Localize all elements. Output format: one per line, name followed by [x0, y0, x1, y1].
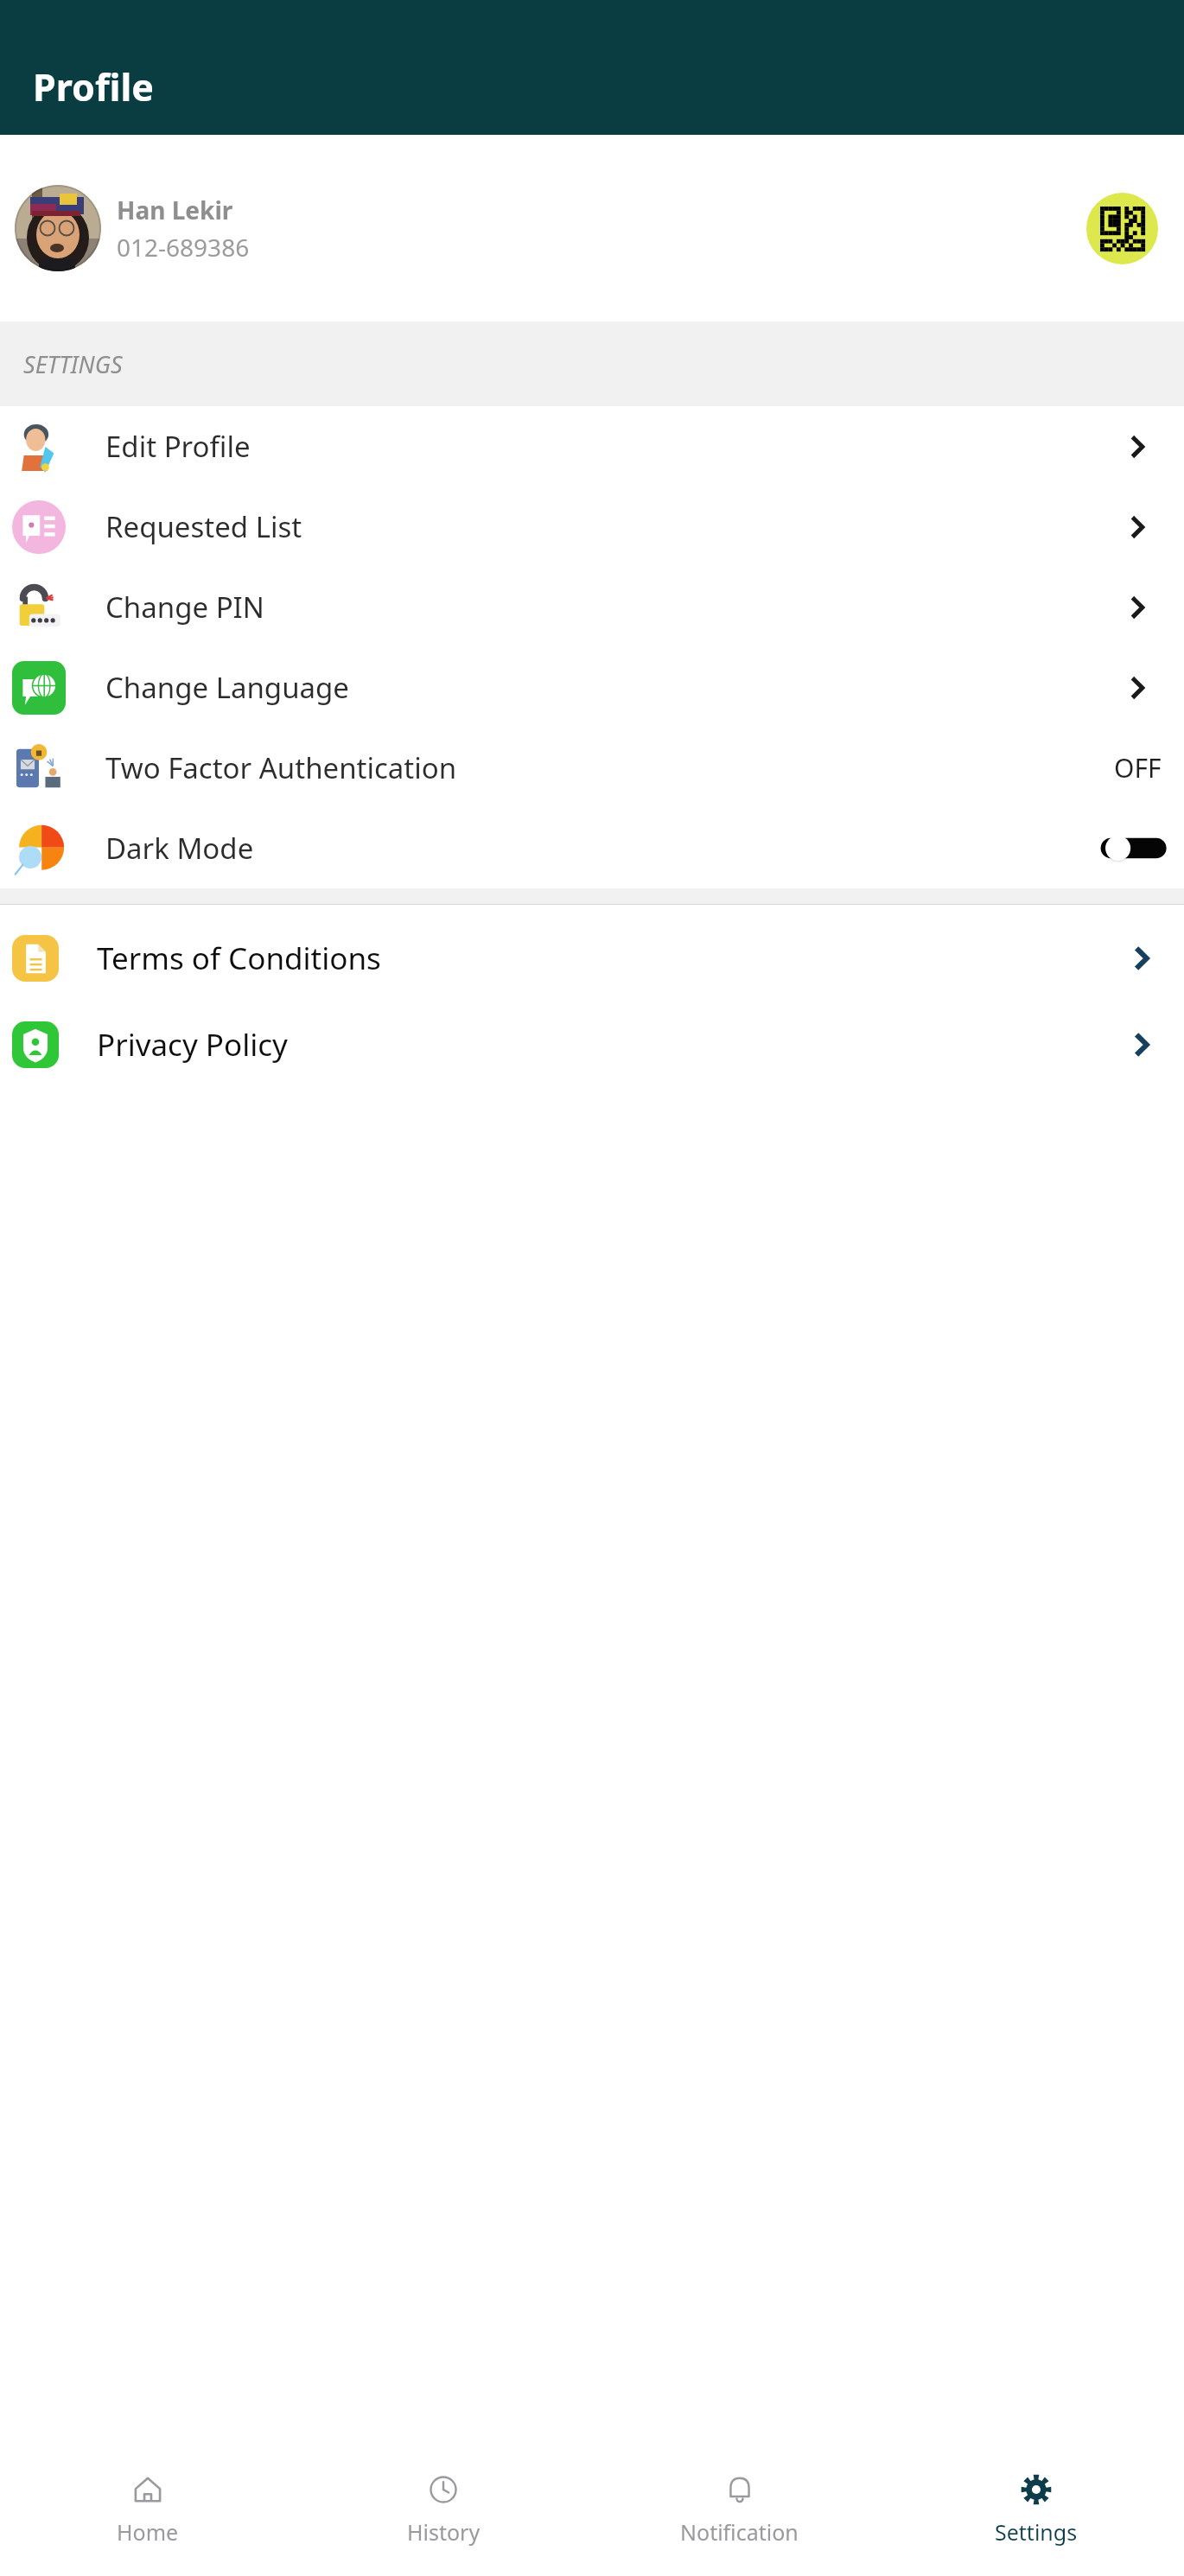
button[interactable]: Privacy Policy: [0, 1002, 1184, 1088]
button[interactable]: Requested List: [0, 487, 1184, 567]
staticText: Terms of Conditions: [97, 938, 381, 979]
staticText: Settings: [995, 2517, 1078, 2547]
staticText: Requested List: [105, 507, 302, 546]
button[interactable]: Settings: [888, 2467, 1184, 2550]
staticText: Edit Profile: [105, 427, 251, 466]
staticText: Profile: [33, 61, 154, 112]
button[interactable]: Terms of Conditions: [0, 915, 1184, 1002]
staticText: Privacy Policy: [97, 1024, 288, 1065]
button[interactable]: Change Language: [0, 647, 1184, 728]
staticText: Two Factor Authentication: [105, 748, 457, 787]
button[interactable]: Notification: [591, 2467, 888, 2550]
button[interactable]: Dark Mode: [0, 808, 1184, 888]
button[interactable]: Han Lekir: [0, 135, 1184, 321]
button[interactable]: Edit Profile: [0, 406, 1184, 487]
staticText: Dark Mode: [105, 829, 254, 868]
button[interactable]: Two Factor Authentication: [0, 728, 1184, 808]
staticText: Notification: [680, 2517, 799, 2547]
staticText: Home: [117, 2517, 179, 2547]
staticText: 012-689386: [117, 231, 250, 264]
staticText: Change PIN: [105, 588, 264, 627]
staticText: SETTINGS: [23, 348, 123, 380]
button[interactable]: Show my QR code: [1086, 193, 1158, 264]
staticText: Change Language: [105, 668, 349, 707]
button[interactable]: Home: [0, 2467, 296, 2550]
staticText: OFF: [1114, 750, 1162, 786]
button[interactable]: Dark Mode toggle, off: [1092, 835, 1162, 862]
staticText: History: [407, 2517, 481, 2547]
button[interactable]: Change PIN: [0, 567, 1184, 647]
staticText: Han Lekir: [117, 194, 233, 226]
button[interactable]: History: [296, 2467, 591, 2550]
